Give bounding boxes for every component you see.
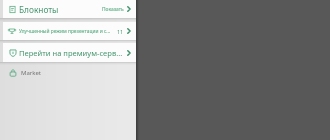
staticText: Показать bbox=[102, 6, 124, 13]
staticText: Перейти на премиум-серв... bbox=[19, 48, 126, 58]
button[interactable]: Перейти на премиум-серв... bbox=[3, 43, 136, 62]
button[interactable]: Улучшенный режим презентации и с... bbox=[3, 22, 136, 40]
staticText: Блокноты bbox=[19, 4, 59, 15]
staticText: 11 bbox=[117, 28, 124, 35]
button[interactable]: Блокноты bbox=[3, 0, 136, 18]
button[interactable]: Market bbox=[0, 65, 136, 81]
staticText: Market bbox=[21, 69, 42, 77]
staticText: Улучшенный режим презентации и с... bbox=[19, 28, 117, 35]
